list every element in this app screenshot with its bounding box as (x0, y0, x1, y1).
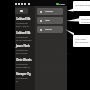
button[interactable]: Stamper Dg (16, 72, 35, 85)
staticText: Accounting (16, 63, 28, 66)
staticText: Accounting (16, 36, 28, 39)
staticText: Caldwell Bk (16, 17, 31, 20)
button[interactable]: Sort by (37, 26, 63, 33)
staticText: Q (16, 80, 18, 83)
staticText: Accounting (16, 77, 28, 80)
staticText: Accounting (16, 22, 28, 25)
staticText: Clete Woods (16, 58, 32, 61)
staticText: Multi level presentation (75, 38, 89, 44)
button[interactable]: Account (15, 8, 28, 14)
button[interactable]: Multi level presentation (73, 35, 90, 47)
staticText: Help (45, 19, 50, 22)
staticText: 0008 Creek St (16, 66, 31, 69)
button[interactable]: Clete Woods (16, 58, 35, 71)
staticText: 14:31 (59, 2, 66, 5)
staticText: Settings (45, 10, 53, 13)
button[interactable]: Help (37, 17, 63, 24)
staticText: 0001 Lane St (16, 25, 30, 28)
button[interactable]: Caldwell Bk (16, 31, 35, 44)
staticText: 4012 Chapman (16, 39, 32, 42)
staticText: Sort by (45, 28, 52, 31)
button[interactable]: Settings (37, 8, 63, 15)
staticText: Multisite updates (75, 4, 90, 7)
staticText: Stamper Dg (16, 72, 31, 75)
staticText: Accounting (16, 49, 28, 52)
button[interactable]: Multisite updates (73, 1, 90, 11)
staticText: Multi site locations (81, 18, 90, 24)
button[interactable]: Multi site locations (79, 16, 90, 24)
button[interactable]: Jason Flack (16, 44, 35, 57)
staticText: Jason Flack (16, 44, 30, 47)
button[interactable]: Caldwell Bk (16, 17, 35, 30)
staticText: 0101 Drive (16, 52, 27, 55)
staticText: Caldwell Bk (16, 31, 31, 34)
staticText: No content (58, 52, 70, 55)
